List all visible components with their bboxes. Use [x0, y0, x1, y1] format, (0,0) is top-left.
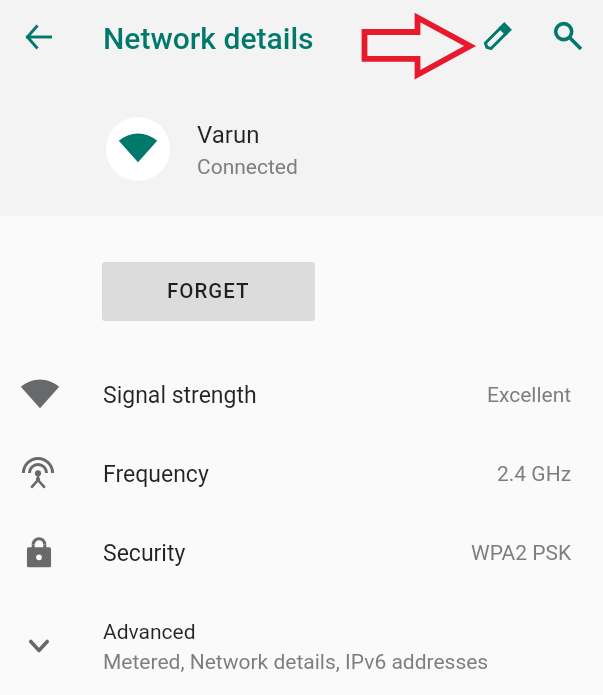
button[interactable]: Advanced	[0, 603, 603, 691]
staticText: Network details	[103, 21, 314, 56]
staticText: Security	[103, 540, 186, 567]
button[interactable]: Security	[0, 515, 603, 592]
staticText: Frequency	[103, 461, 209, 488]
staticText: Connected	[197, 155, 298, 180]
button[interactable]: Back	[0, 0, 78, 76]
staticText: Varun	[197, 121, 260, 149]
staticText: Signal strength	[103, 382, 257, 409]
button[interactable]: Frequency	[0, 436, 603, 513]
button[interactable]: Search	[540, 0, 595, 76]
staticText: Advanced	[103, 620, 196, 645]
staticText: Excellent	[487, 383, 572, 408]
button[interactable]: Signal strength	[0, 357, 603, 434]
staticText: 2.4 GHz	[497, 462, 572, 487]
staticText: Metered, Network details, IPv6 addresses	[103, 650, 489, 675]
button[interactable]: Edit	[471, 0, 526, 76]
staticText: FORGET	[167, 279, 250, 303]
button[interactable]: FORGET	[102, 262, 315, 321]
staticText: WPA2 PSK	[471, 541, 572, 566]
